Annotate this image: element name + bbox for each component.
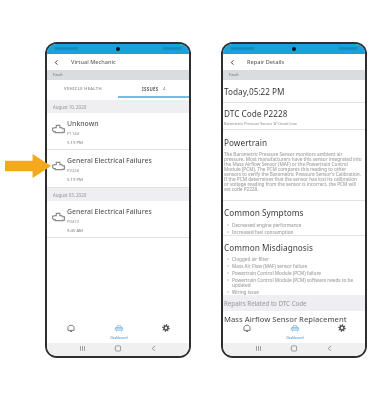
staticText: General Electrical Failures bbox=[67, 207, 152, 216]
staticText: General Electrical Failures bbox=[67, 156, 152, 165]
staticText: Virtual Mechanic bbox=[71, 58, 116, 66]
staticText: Mass Air Flow (MAF) sensor failure bbox=[232, 263, 308, 269]
staticText: Common Misdiagnosis bbox=[224, 242, 314, 253]
staticText: Wiring issue bbox=[232, 289, 259, 295]
staticText: The Barometric Pressure Sensor monitors … bbox=[224, 151, 362, 192]
staticText: Fault bbox=[229, 72, 239, 78]
staticText: DTC Code P2228 bbox=[224, 108, 288, 119]
staticText: Dashboard bbox=[286, 335, 304, 339]
staticText: Common Symptoms bbox=[224, 207, 304, 218]
staticText: Barometric Pressure Sensor 'A' Circuit L… bbox=[224, 121, 297, 126]
staticText: August 10, 2020 bbox=[53, 104, 87, 110]
staticText: Unknown bbox=[67, 119, 99, 128]
button[interactable]: Alerts bbox=[223, 321, 271, 343]
staticText: Powertrain bbox=[224, 137, 268, 148]
staticText: ISSUES bbox=[142, 86, 159, 92]
button[interactable]: Dashboard bbox=[271, 321, 318, 343]
button[interactable]: Alerts bbox=[47, 321, 95, 343]
button[interactable]: Unknown bbox=[47, 113, 189, 150]
staticText: 4 bbox=[163, 86, 166, 92]
staticText: 5:19 PM bbox=[67, 177, 83, 183]
staticText: Increased fuel consumption bbox=[232, 229, 294, 235]
staticText: P2228 bbox=[67, 168, 80, 174]
staticText: 9:45 AM bbox=[67, 228, 83, 234]
staticText: Decreased engine performance bbox=[232, 222, 302, 228]
staticText: Dashboard bbox=[110, 335, 128, 339]
staticText: Clogged air filter bbox=[232, 256, 269, 262]
staticText: Today,05:22 PM bbox=[224, 86, 285, 97]
button[interactable]: Dashboard bbox=[95, 321, 142, 343]
staticText: Repair Details bbox=[247, 58, 285, 66]
button[interactable]: Back bbox=[47, 54, 66, 70]
button[interactable]: ISSUES bbox=[118, 80, 189, 98]
staticText: Powertrain Control Module (PCM) software… bbox=[232, 277, 362, 288]
button[interactable]: Settings bbox=[318, 321, 365, 343]
button[interactable]: VEHICLE HEALTH bbox=[47, 80, 118, 98]
staticText: 5:19 PM bbox=[67, 140, 83, 146]
button[interactable]: General Electrical Failures bbox=[47, 201, 189, 238]
staticText: Powertrain Control Module (PCM) failure bbox=[232, 270, 321, 276]
button[interactable]: Settings bbox=[142, 321, 189, 343]
button[interactable]: Back bbox=[223, 54, 242, 70]
staticText: Fault bbox=[53, 72, 63, 78]
staticText: P1144 bbox=[67, 131, 80, 137]
button[interactable]: General Electrical Failures bbox=[47, 150, 189, 188]
staticText: August 03, 2020 bbox=[53, 192, 87, 198]
staticText: VEHICLE HEALTH bbox=[64, 86, 102, 92]
staticText: Repairs Related to DTC Code bbox=[224, 299, 307, 307]
staticText: Mass Airflow Sensor Replacement bbox=[224, 314, 347, 324]
staticText: P0472 bbox=[67, 219, 80, 225]
